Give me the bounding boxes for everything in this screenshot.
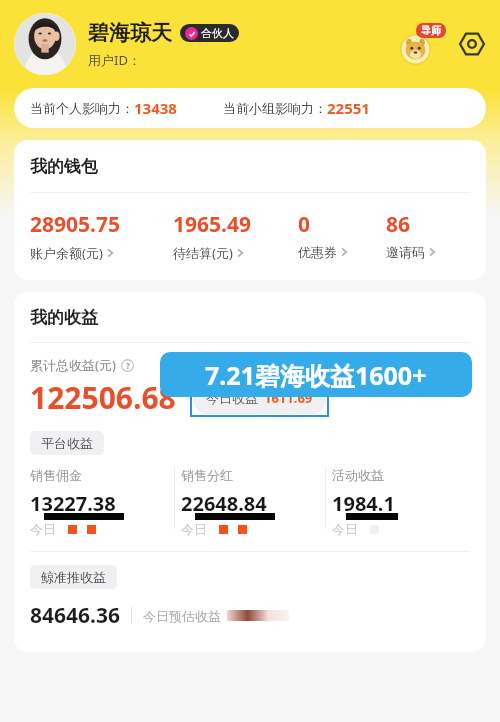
button[interactable]: 活动收益 — [332, 467, 470, 537]
staticText: 销售佣金 — [30, 467, 82, 483]
staticText: 待结算(元) — [173, 244, 233, 262]
button[interactable]: 当前个人影响力： — [14, 88, 486, 128]
staticText: 22551 — [327, 98, 370, 118]
button[interactable]: 今日收益 — [193, 382, 326, 414]
button[interactable]: 0 — [298, 210, 386, 260]
staticText: 今日 — [30, 521, 56, 537]
staticText: 销售分红 — [181, 467, 233, 483]
staticText: 84646.36 — [30, 601, 120, 630]
staticText: 当前小组影响力： — [223, 100, 327, 116]
staticText: 邀请码 — [386, 244, 425, 260]
staticText: 账户余额(元) — [30, 244, 103, 262]
staticText: 13227.38 — [30, 490, 116, 517]
button[interactable]: Profile photo — [14, 13, 76, 75]
staticText: 1984.1 — [332, 490, 395, 517]
staticText: 今日收益 — [206, 390, 258, 406]
staticText: 优惠券 — [298, 244, 337, 260]
staticText: 22648.84 — [181, 490, 267, 517]
staticText: 合伙人 — [201, 26, 234, 40]
staticText: ? — [126, 360, 130, 371]
staticText: 86 — [386, 210, 411, 239]
button[interactable]: 销售分红 — [181, 467, 319, 537]
button[interactable]: 1965.49 — [173, 210, 298, 262]
staticText: 碧海琼天 — [88, 20, 172, 46]
staticText: 28905.75 — [30, 210, 120, 239]
staticText: 今日 — [181, 521, 207, 537]
staticText: 7.21碧海收益1600+ — [205, 358, 427, 392]
staticText: 今日 — [332, 521, 358, 537]
staticText: 13438 — [134, 98, 177, 118]
staticText: 今日预估收益 — [143, 608, 221, 624]
button[interactable]: 28905.75 — [30, 210, 173, 262]
staticText: 1611.69 — [264, 389, 313, 407]
staticText: 122506.68 — [30, 377, 176, 418]
staticText: 我的收益 — [30, 307, 98, 328]
staticText: 当前个人影响力： — [30, 100, 134, 116]
button[interactable]: 合伙人 — [180, 24, 239, 42]
staticText: 1965.49 — [173, 210, 251, 239]
button[interactable]: 86 — [386, 210, 470, 260]
staticText: 用户ID： — [88, 51, 141, 69]
staticText: 我的钱包 — [30, 156, 98, 177]
button[interactable]: 导师 level badge — [400, 23, 446, 65]
staticText: 导师 — [421, 24, 441, 37]
button[interactable]: 销售佣金 — [30, 467, 168, 537]
staticText: 0 — [298, 210, 311, 239]
staticText: 平台收益 — [41, 435, 93, 451]
staticText: 鲸准推收益 — [41, 569, 106, 585]
button[interactable]: Settings — [458, 30, 486, 58]
staticText: 活动收益 — [332, 467, 384, 483]
staticText: 累计总收益(元) — [30, 356, 116, 374]
